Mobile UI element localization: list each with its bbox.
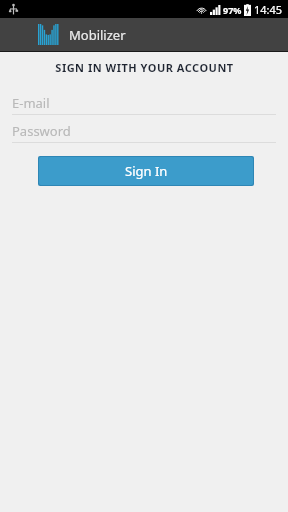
- button[interactable]: Password: [0, 119, 288, 142]
- staticText: Password: [12, 122, 71, 140]
- button[interactable]: Sign In: [39, 157, 253, 185]
- button[interactable]: E-mail: [0, 91, 288, 114]
- staticText: SIGN IN WITH YOUR ACCOUNT: [55, 60, 234, 75]
- staticText: Mobilizer: [69, 26, 126, 44]
- other: Mobilizer logo: [38, 24, 59, 45]
- staticText: 97%: [223, 4, 242, 16]
- staticText: E-mail: [12, 94, 50, 112]
- staticText: 14:45: [254, 2, 283, 17]
- staticText: Sign In: [125, 162, 168, 180]
